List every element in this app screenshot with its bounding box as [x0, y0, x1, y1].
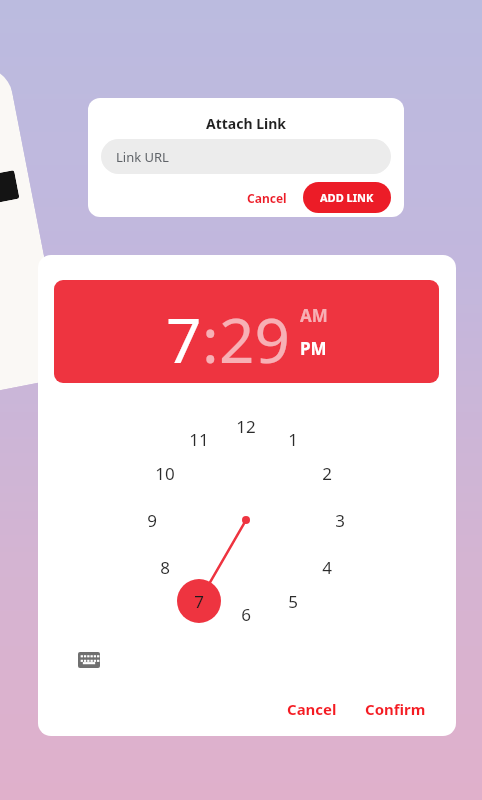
button[interactable]: 1 — [271, 417, 315, 461]
button[interactable]: 11 — [177, 417, 221, 461]
staticText: 7 — [166, 297, 202, 381]
button[interactable]: 9 — [130, 498, 174, 542]
button[interactable]: PM — [300, 336, 327, 361]
button[interactable]: 4 — [305, 545, 349, 589]
button[interactable]: Cancel — [281, 695, 343, 723]
button[interactable]: 12 — [224, 404, 268, 448]
staticText: : — [202, 297, 219, 381]
staticText: ADD LINK — [320, 190, 374, 205]
button[interactable]: 7 — [166, 297, 202, 381]
staticText: Cancel — [287, 699, 337, 719]
staticText: PM — [300, 337, 327, 360]
staticText: 5 — [288, 590, 298, 613]
staticText: 11 — [189, 428, 209, 451]
staticText: Link URL — [116, 148, 169, 166]
button[interactable]: 6 — [224, 592, 268, 636]
staticText: 29 — [219, 297, 290, 381]
staticText: 8 — [160, 556, 170, 579]
button[interactable]: 3 — [318, 498, 362, 542]
button[interactable]: Link URL — [101, 139, 391, 174]
staticText: AM — [300, 304, 328, 327]
staticText: 4 — [322, 556, 332, 579]
staticText: 3 — [335, 509, 345, 532]
staticText: Confirm — [365, 699, 426, 719]
staticText: Attach Link — [88, 114, 404, 133]
button[interactable]: Cancel — [241, 186, 293, 210]
staticText: 9 — [147, 509, 157, 532]
staticText: 12 — [236, 415, 256, 438]
button[interactable]: Switch to text input — [74, 645, 104, 675]
staticText: 7 — [194, 590, 204, 613]
button[interactable]: 10 — [143, 451, 187, 495]
staticText: 2 — [322, 462, 332, 485]
button[interactable]: 29 — [219, 297, 290, 381]
button[interactable]: AM — [300, 303, 328, 328]
staticText: Cancel — [247, 190, 287, 206]
button[interactable]: 2 — [305, 451, 349, 495]
button[interactable]: 5 — [271, 579, 315, 623]
button[interactable]: 7 — [177, 579, 221, 623]
staticText: 10 — [155, 462, 175, 485]
button[interactable]: Confirm — [359, 695, 432, 723]
staticText: 6 — [241, 603, 251, 626]
staticText: 1 — [288, 428, 298, 451]
button[interactable]: ADD LINK — [303, 182, 391, 213]
button[interactable]: 8 — [143, 545, 187, 589]
